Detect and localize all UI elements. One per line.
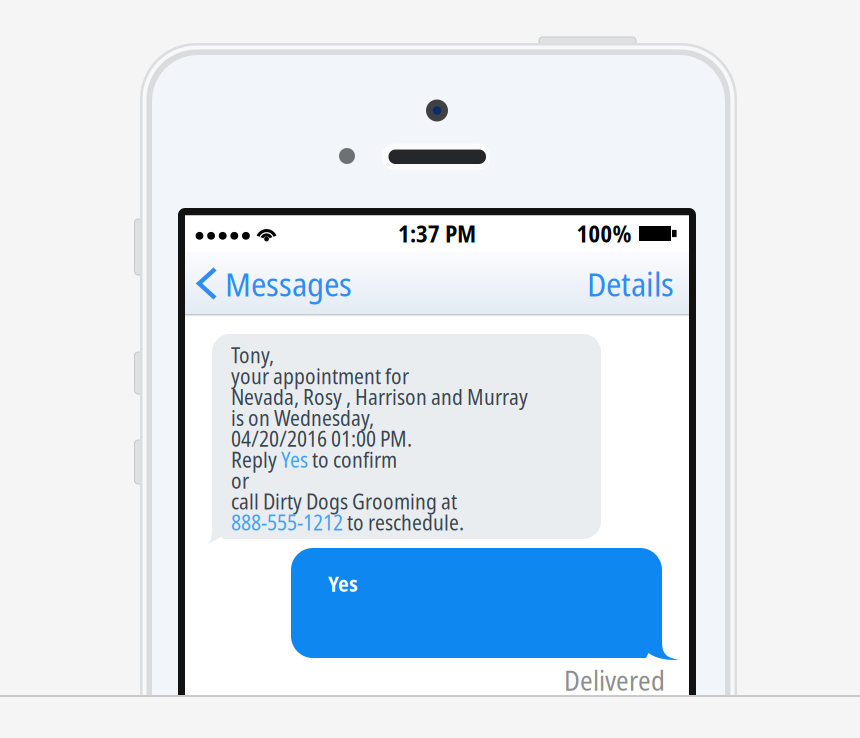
- button[interactable]: Details: [572, 252, 689, 315]
- staticText: Details: [587, 261, 674, 306]
- staticText: Tony,: [231, 340, 274, 369]
- staticText: to reschedule.: [343, 508, 464, 537]
- staticText: to confirm: [308, 445, 397, 474]
- staticText: Reply: [231, 445, 281, 474]
- staticText: Yes: [281, 445, 308, 474]
- staticText: Delivered: [564, 661, 665, 699]
- button[interactable]: Messages: [185, 252, 362, 315]
- staticText: Nevada, Rosy , Harrison and Murray: [231, 382, 528, 411]
- staticText: your appointment for: [231, 361, 409, 390]
- staticText: or: [231, 466, 249, 495]
- staticText: 100%: [576, 218, 631, 249]
- staticText: 1:37 PM: [398, 218, 476, 249]
- staticText: 888-555-1212: [231, 508, 343, 537]
- staticText: call Dirty Dogs Grooming at: [231, 487, 457, 516]
- staticText: 04/20/2016 01:00 PM.: [231, 424, 412, 453]
- staticText: is on Wednesday,: [231, 403, 374, 432]
- staticText: Yes: [328, 569, 358, 598]
- staticText: Messages: [225, 261, 352, 306]
